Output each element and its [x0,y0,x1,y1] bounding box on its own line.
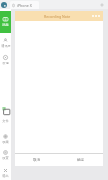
button[interactable]: 通讯录 [0,35,11,51]
staticText: 文件 [2,119,9,123]
staticText: Recording Note [44,14,71,19]
staticText: 取消 [33,158,41,163]
button[interactable]: iPhone X [10,1,39,9]
staticText: 发现 [2,61,9,65]
staticText: 设置 [2,156,9,160]
staticText: 通讯录 [1,44,11,48]
button[interactable]: 退出 [0,165,11,180]
staticText: 消息 [2,23,9,27]
button[interactable]: 设置 [0,147,11,163]
button[interactable]: App icon [1,2,7,8]
button[interactable]: 发现 [0,52,11,68]
button[interactable]: 确定 [59,154,103,166]
button[interactable]: 消息 [0,11,11,33]
button[interactable]: 收藏 [0,131,11,147]
staticText: 确定 [77,158,85,163]
button[interactable]: 文件 [0,103,11,126]
button[interactable]: New tab [98,1,105,8]
staticText: iPhone X [17,3,32,8]
staticText: 收藏 [2,140,9,144]
button[interactable]: Recording Note [15,11,103,21]
button[interactable]: 取消 [15,154,59,166]
staticText: 退出 [2,174,9,178]
